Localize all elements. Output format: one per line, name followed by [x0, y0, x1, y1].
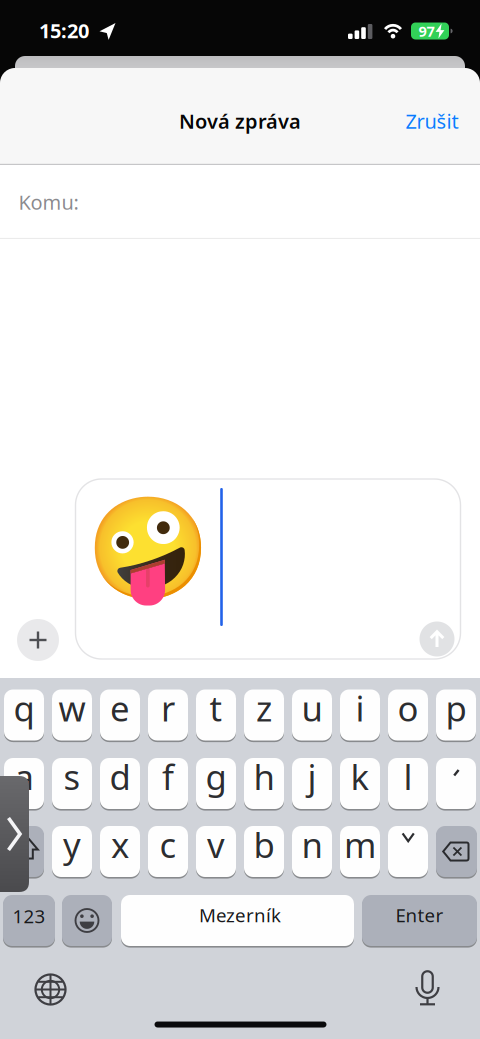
button[interactable]: Send — [419, 621, 454, 656]
staticText: Zrušit — [405, 108, 458, 134]
staticText: p — [445, 685, 466, 731]
button[interactable]: Message — [75, 479, 460, 659]
staticText: 97 — [418, 21, 434, 41]
button[interactable]: u — [292, 689, 332, 742]
staticText: n — [301, 821, 322, 867]
button[interactable]: c — [148, 826, 188, 879]
button[interactable]: ˇ — [388, 826, 428, 879]
button[interactable]: n — [292, 826, 332, 879]
staticText: y — [63, 821, 81, 867]
button[interactable]: e — [100, 689, 140, 742]
button[interactable]: Komu: — [0, 165, 480, 237]
button[interactable]: s — [52, 758, 92, 811]
button[interactable]: j — [292, 758, 332, 811]
staticText: 123 — [12, 904, 45, 928]
button[interactable]: g — [196, 758, 236, 811]
staticText: w — [58, 685, 85, 731]
staticText: m — [344, 821, 376, 867]
button[interactable]: i — [340, 689, 380, 742]
staticText: r — [161, 685, 175, 731]
button[interactable]: m — [340, 826, 380, 879]
staticText: a — [14, 753, 33, 799]
staticText: z — [256, 685, 272, 731]
staticText: t — [209, 685, 222, 731]
staticText: Mezerník — [199, 903, 281, 927]
staticText: x — [111, 821, 129, 867]
button[interactable]: b — [244, 826, 284, 879]
button[interactable]: Dictation — [416, 970, 439, 1005]
button[interactable]: h — [244, 758, 284, 811]
button[interactable]: f — [148, 758, 188, 811]
button[interactable]: Delete — [436, 826, 477, 879]
staticText: q — [13, 685, 34, 731]
staticText: e — [110, 685, 130, 731]
button[interactable]: Enter — [362, 895, 477, 948]
button[interactable]: o — [388, 689, 428, 742]
button[interactable]: t — [196, 689, 236, 742]
staticText: l — [403, 753, 412, 799]
staticText: b — [253, 821, 274, 867]
staticText: d — [109, 753, 130, 799]
button[interactable]: Zrušit — [405, 108, 458, 134]
staticText: k — [350, 753, 369, 799]
staticText: 🤪 — [85, 492, 210, 606]
button[interactable]: q — [4, 689, 44, 742]
staticText: o — [397, 685, 418, 731]
staticText: f — [162, 753, 174, 799]
staticText: s — [63, 753, 80, 799]
staticText: i — [355, 685, 364, 731]
staticText: j — [307, 753, 316, 799]
button[interactable]: w — [52, 689, 92, 742]
staticText: Nová zpráva — [179, 108, 301, 134]
staticText: u — [301, 685, 322, 731]
button[interactable]: r — [148, 689, 188, 742]
button[interactable]: Emoji — [62, 895, 112, 948]
button[interactable]: Show app — [0, 776, 29, 892]
staticText: g — [205, 753, 226, 799]
button[interactable]: d — [100, 758, 140, 811]
button[interactable]: Mezerník — [121, 895, 354, 948]
button[interactable]: y — [52, 826, 92, 879]
staticText: v — [207, 821, 225, 867]
staticText: Enter — [395, 903, 443, 927]
button[interactable]: k — [340, 758, 380, 811]
button[interactable]: p — [436, 689, 476, 742]
button[interactable]: x — [100, 826, 140, 879]
button[interactable]: 123 — [3, 895, 55, 948]
staticText: Komu: — [18, 189, 78, 215]
button[interactable]: l — [388, 758, 428, 811]
button[interactable]: ´ — [436, 758, 476, 811]
button[interactable]: v — [196, 826, 236, 879]
staticText: c — [159, 821, 176, 867]
button[interactable]: a — [4, 758, 44, 811]
button[interactable]: Apps — [17, 619, 59, 661]
staticText: 15:20 — [39, 17, 89, 44]
button[interactable]: Shift — [3, 826, 44, 879]
button[interactable]: Next keyboard — [34, 973, 66, 1005]
staticText: h — [253, 753, 274, 799]
button[interactable]: z — [244, 689, 284, 742]
